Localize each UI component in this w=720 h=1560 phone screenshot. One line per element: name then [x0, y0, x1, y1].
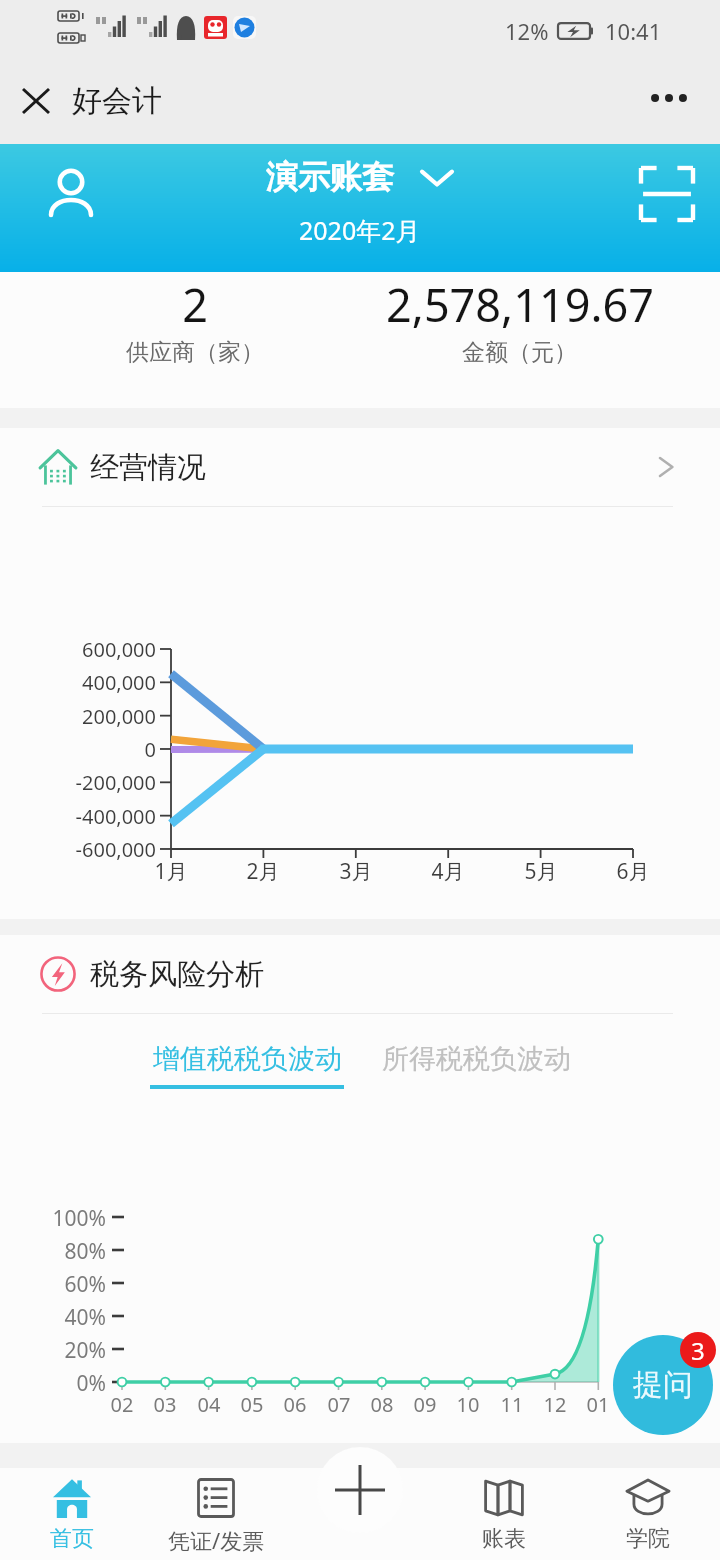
button[interactable]: 2 [32, 272, 357, 408]
staticText: -400,000 [0, 803, 156, 830]
staticText: 账表 [482, 1525, 526, 1553]
staticText: 提问 [633, 1366, 693, 1404]
staticText: 80% [0, 1237, 106, 1266]
staticText: 经营情况 [90, 449, 206, 486]
button[interactable]: 凭证/发票 [144, 1468, 288, 1560]
button[interactable]: 学院 [576, 1468, 720, 1560]
button[interactable]: 2,578,119.67 [357, 272, 682, 408]
staticText: -200,000 [0, 769, 156, 796]
button[interactable]: 所得税税负波动 [382, 1042, 571, 1076]
staticText: 400,000 [0, 669, 156, 696]
staticText: 01 [576, 1391, 620, 1418]
staticText: 所得税税负波动 [382, 1042, 571, 1076]
staticText: 增值税税负波动 [153, 1042, 342, 1076]
staticText: 2,578,119.67 [386, 274, 654, 335]
staticText: 40% [0, 1303, 106, 1332]
button[interactable]: 税务风险分析 [0, 935, 720, 1013]
staticText: 100% [0, 1204, 106, 1233]
staticText: 05 [230, 1391, 274, 1418]
button[interactable]: 演示账套 [266, 157, 454, 197]
staticText: 07 [317, 1391, 361, 1418]
staticText: 供应商（家） [126, 338, 264, 367]
staticText: 04 [187, 1391, 231, 1418]
button[interactable]: Close [7, 72, 64, 129]
button[interactable]: Scan [641, 168, 693, 220]
button[interactable]: 提问 [613, 1335, 713, 1435]
staticText: 好会计 [72, 82, 162, 120]
staticText: 6月 [601, 857, 665, 886]
staticText: 02 [100, 1391, 144, 1418]
staticText: 演示账套 [266, 157, 394, 197]
staticText: 5月 [509, 857, 573, 886]
button[interactable]: 账表 [432, 1468, 576, 1560]
staticText: 11 [490, 1391, 534, 1418]
staticText: -600,000 [0, 836, 156, 863]
button[interactable]: Profile [46, 167, 96, 217]
staticText: 0 [0, 736, 156, 763]
staticText: 10 [446, 1391, 490, 1418]
staticText: 06 [273, 1391, 317, 1418]
staticText: 0% [0, 1369, 106, 1398]
staticText: 首页 [50, 1525, 94, 1553]
staticText: 12 [533, 1391, 577, 1418]
staticText: 金额（元） [462, 338, 577, 367]
button[interactable]: 经营情况 [0, 428, 720, 506]
staticText: 10:41 [605, 16, 662, 46]
staticText: 09 [403, 1391, 447, 1418]
button[interactable]: 增值税税负波动 [150, 1042, 344, 1089]
button[interactable]: 首页 [0, 1468, 144, 1560]
button[interactable]: More options [641, 70, 697, 126]
button[interactable]: Add [317, 1447, 403, 1533]
staticText: 3 [691, 1334, 705, 1367]
staticText: 60% [0, 1270, 106, 1299]
staticText: 2020年2月 [299, 213, 421, 247]
staticText: 4月 [416, 857, 480, 886]
staticText: 20% [0, 1336, 106, 1365]
staticText: 600,000 [0, 636, 156, 663]
staticText: 凭证/发票 [168, 1525, 265, 1555]
staticText: 2月 [231, 857, 295, 886]
staticText: 200,000 [0, 703, 156, 730]
staticText: 3月 [324, 857, 388, 886]
staticText: 2 [182, 274, 208, 335]
staticText: 08 [360, 1391, 404, 1418]
staticText: 1月 [139, 857, 203, 886]
staticText: 03 [143, 1391, 187, 1418]
staticText: 12% [505, 16, 549, 46]
staticText: 税务风险分析 [90, 956, 264, 993]
staticText: 学院 [626, 1525, 670, 1553]
